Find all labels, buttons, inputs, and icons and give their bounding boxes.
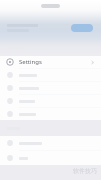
staticText: 软件技巧 — [73, 167, 97, 175]
button[interactable] — [0, 95, 101, 107]
button[interactable] — [0, 108, 101, 120]
button[interactable] — [0, 136, 101, 150]
staticText: Settings — [19, 58, 42, 66]
button[interactable] — [0, 69, 101, 81]
button[interactable] — [0, 151, 101, 165]
button[interactable] — [0, 82, 101, 94]
button[interactable]: Settings — [0, 56, 101, 68]
button[interactable]: Action — [71, 24, 93, 32]
